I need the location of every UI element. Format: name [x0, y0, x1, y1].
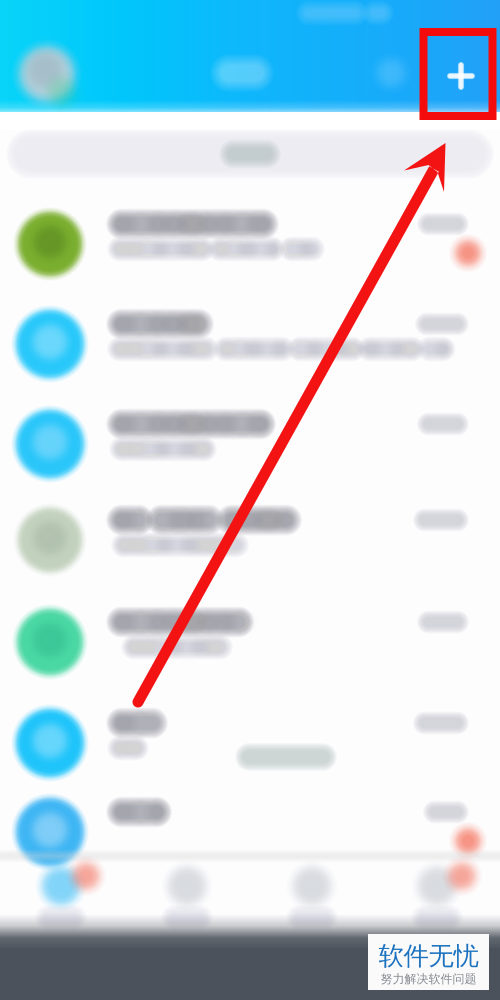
button[interactable] [0, 693, 500, 793]
staticText: 软件无忧 [378, 940, 478, 971]
button[interactable]: New chat [422, 30, 500, 122]
button[interactable]: Profile [375, 856, 500, 924]
button[interactable] [0, 490, 500, 590]
button[interactable]: Discover [250, 856, 375, 924]
staticText: 努力解决软件问题 [380, 972, 476, 986]
button[interactable]: Messages [0, 856, 124, 924]
button[interactable] [0, 294, 500, 394]
button[interactable] [0, 194, 500, 294]
button[interactable] [0, 394, 500, 494]
button[interactable]: Contacts [125, 856, 250, 924]
button[interactable]: Search [0, 126, 500, 184]
button[interactable] [0, 782, 500, 882]
button[interactable] [0, 592, 500, 692]
